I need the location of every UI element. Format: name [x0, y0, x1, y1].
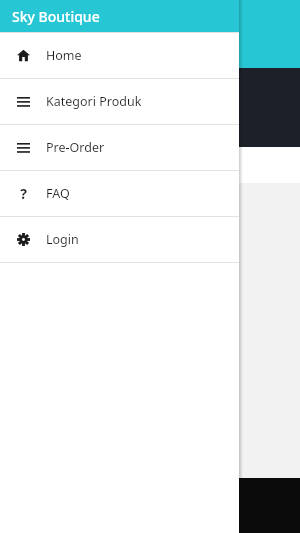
staticText: RESELLER: [24, 76, 98, 95]
button[interactable]: ?: [0, 171, 239, 216]
staticText: ?: [20, 184, 27, 203]
staticText: ECERAN: [24, 97, 84, 116]
staticText: Sky Boutique: [12, 7, 100, 26]
staticText: Login: [46, 231, 79, 248]
staticText: FAQ: [46, 185, 70, 202]
staticText: Home: [46, 47, 82, 64]
staticText: Kategori Produk: [46, 93, 142, 110]
button[interactable]: Kategori Produk: [0, 79, 239, 124]
staticText: Pre-Order: [46, 139, 105, 156]
button[interactable]: Pre-Order: [0, 125, 239, 170]
button[interactable]: Login: [0, 217, 239, 262]
button[interactable]: Home: [0, 33, 239, 78]
button[interactable]: Open navigation menu: [8, 0, 42, 34]
staticText: DROPSHIP: [24, 118, 99, 137]
button[interactable]: All Products: [22, 154, 84, 177]
